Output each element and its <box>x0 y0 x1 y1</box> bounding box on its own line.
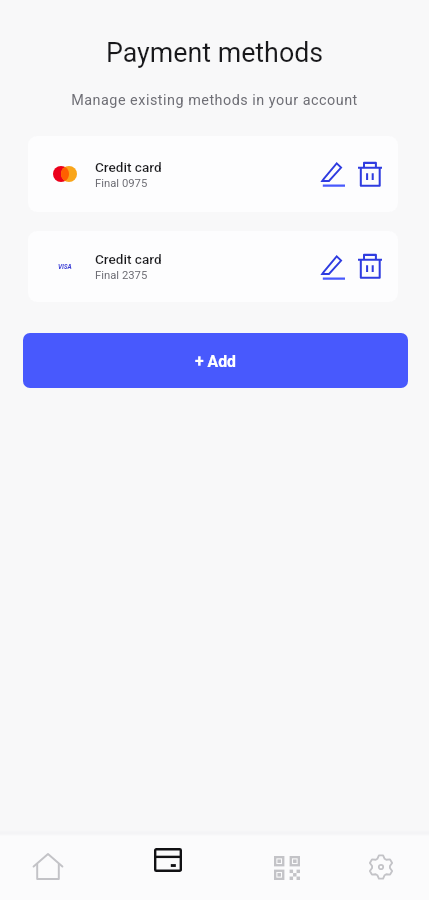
staticText: Credit card <box>95 159 162 175</box>
button[interactable]: Delete <box>353 136 387 212</box>
staticText: + Add <box>195 352 236 371</box>
staticText: Manage existing methods in your account <box>0 92 429 109</box>
button[interactable]: Edit <box>317 231 349 302</box>
button[interactable]: Credit card <box>28 136 398 212</box>
button[interactable]: Edit <box>317 136 349 212</box>
button[interactable]: Cards <box>144 836 192 884</box>
button[interactable]: Delete <box>353 231 387 302</box>
staticText: Final 0975 <box>95 177 148 190</box>
button[interactable]: Scan <box>263 844 311 892</box>
button[interactable]: Home <box>24 842 72 890</box>
staticText: Final 2375 <box>95 269 148 282</box>
staticText: VISA <box>58 263 72 271</box>
staticText: Payment methods <box>0 37 429 68</box>
button[interactable]: Settings <box>357 843 405 891</box>
button[interactable]: VISA <box>28 231 398 302</box>
staticText: Credit card <box>95 251 162 267</box>
button[interactable]: + Add <box>23 333 408 388</box>
